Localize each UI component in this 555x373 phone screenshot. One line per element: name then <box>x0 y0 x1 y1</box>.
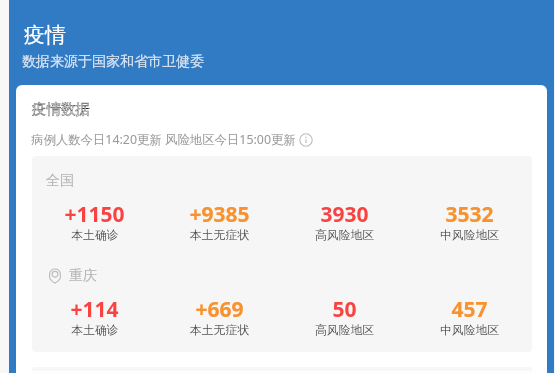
staticText: 疫情 <box>24 22 66 48</box>
button[interactable]: 高风险地区 <box>282 228 407 243</box>
staticText: +1150 <box>64 200 125 229</box>
staticText: 3930 <box>320 200 369 229</box>
staticText: 中风险地区 <box>440 323 499 338</box>
button[interactable]: +669 <box>157 295 282 324</box>
staticText: 3532 <box>445 200 494 229</box>
staticText: 本土确诊 <box>71 323 119 338</box>
staticText: 高风险地区 <box>315 323 374 338</box>
button[interactable]: Info about the data sources <box>299 133 313 147</box>
button[interactable]: 457 <box>407 295 532 324</box>
staticText: 本土确诊 <box>71 228 119 243</box>
button[interactable]: 中风险地区 <box>407 323 532 338</box>
button[interactable]: 3532 <box>407 200 532 229</box>
other: Location <box>49 268 61 284</box>
staticText: 50 <box>332 295 357 324</box>
staticText: 重庆 <box>69 267 97 285</box>
staticText: 457 <box>451 295 488 324</box>
button[interactable]: 本土无症状 <box>157 228 282 243</box>
staticText: 数据来源于国家和省市卫健委 <box>22 53 204 71</box>
button[interactable]: +114 <box>32 295 157 324</box>
button[interactable]: 高风险地区 <box>282 323 407 338</box>
button[interactable]: +9385 <box>157 200 282 229</box>
staticText: 中风险地区 <box>440 228 499 243</box>
button[interactable]: 本土确诊 <box>32 323 157 338</box>
staticText: 本土无症状 <box>190 323 249 338</box>
staticText: 本土无症状 <box>190 228 249 243</box>
staticText: 病例人数今日14:20更新 风险地区今日15:00更新 <box>31 131 296 148</box>
staticText: +114 <box>70 295 119 324</box>
button[interactable]: 全国 <box>46 172 74 190</box>
button[interactable]: 50 <box>282 295 407 324</box>
button[interactable]: 本土确诊 <box>32 228 157 243</box>
button[interactable]: 3930 <box>282 200 407 229</box>
button[interactable]: Location <box>49 267 97 285</box>
button[interactable]: 中风险地区 <box>407 228 532 243</box>
staticText: 全国 <box>46 172 74 190</box>
staticText: 高风险地区 <box>315 228 374 243</box>
button[interactable]: +1150 <box>32 200 157 229</box>
staticText: +669 <box>195 295 244 324</box>
staticText: +9385 <box>189 200 250 229</box>
staticText: 疫情数据 <box>32 100 90 118</box>
button[interactable]: 本土无症状 <box>157 323 282 338</box>
